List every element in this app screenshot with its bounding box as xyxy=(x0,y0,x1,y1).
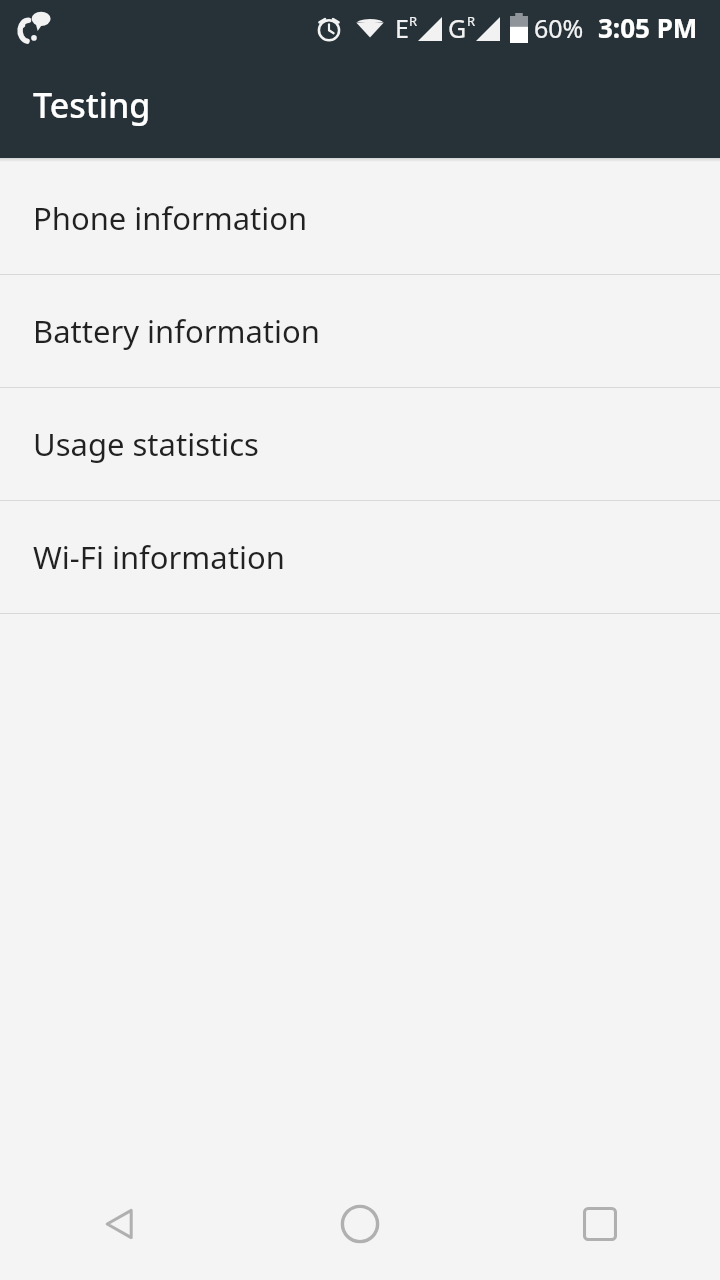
staticText: 60% xyxy=(534,11,584,45)
button[interactable]: Wi-Fi information xyxy=(0,501,720,613)
staticText: Battery information xyxy=(33,310,320,352)
button[interactable]: Phone information xyxy=(0,162,720,274)
button[interactable]: Battery information xyxy=(0,275,720,387)
staticText: G xyxy=(448,11,467,45)
staticText: R xyxy=(409,12,418,30)
button[interactable]: Recent apps xyxy=(480,1168,720,1280)
button[interactable]: Home xyxy=(240,1168,480,1280)
staticText: 3:05 PM xyxy=(598,10,698,45)
button[interactable]: Usage statistics xyxy=(0,388,720,500)
staticText: Phone information xyxy=(33,197,308,239)
button[interactable]: Back xyxy=(0,1168,240,1280)
staticText: Usage statistics xyxy=(33,423,259,465)
staticText: E xyxy=(395,11,409,45)
staticText: R xyxy=(467,12,476,30)
staticText: Wi-Fi information xyxy=(33,536,285,578)
staticText: Testing xyxy=(33,82,151,128)
